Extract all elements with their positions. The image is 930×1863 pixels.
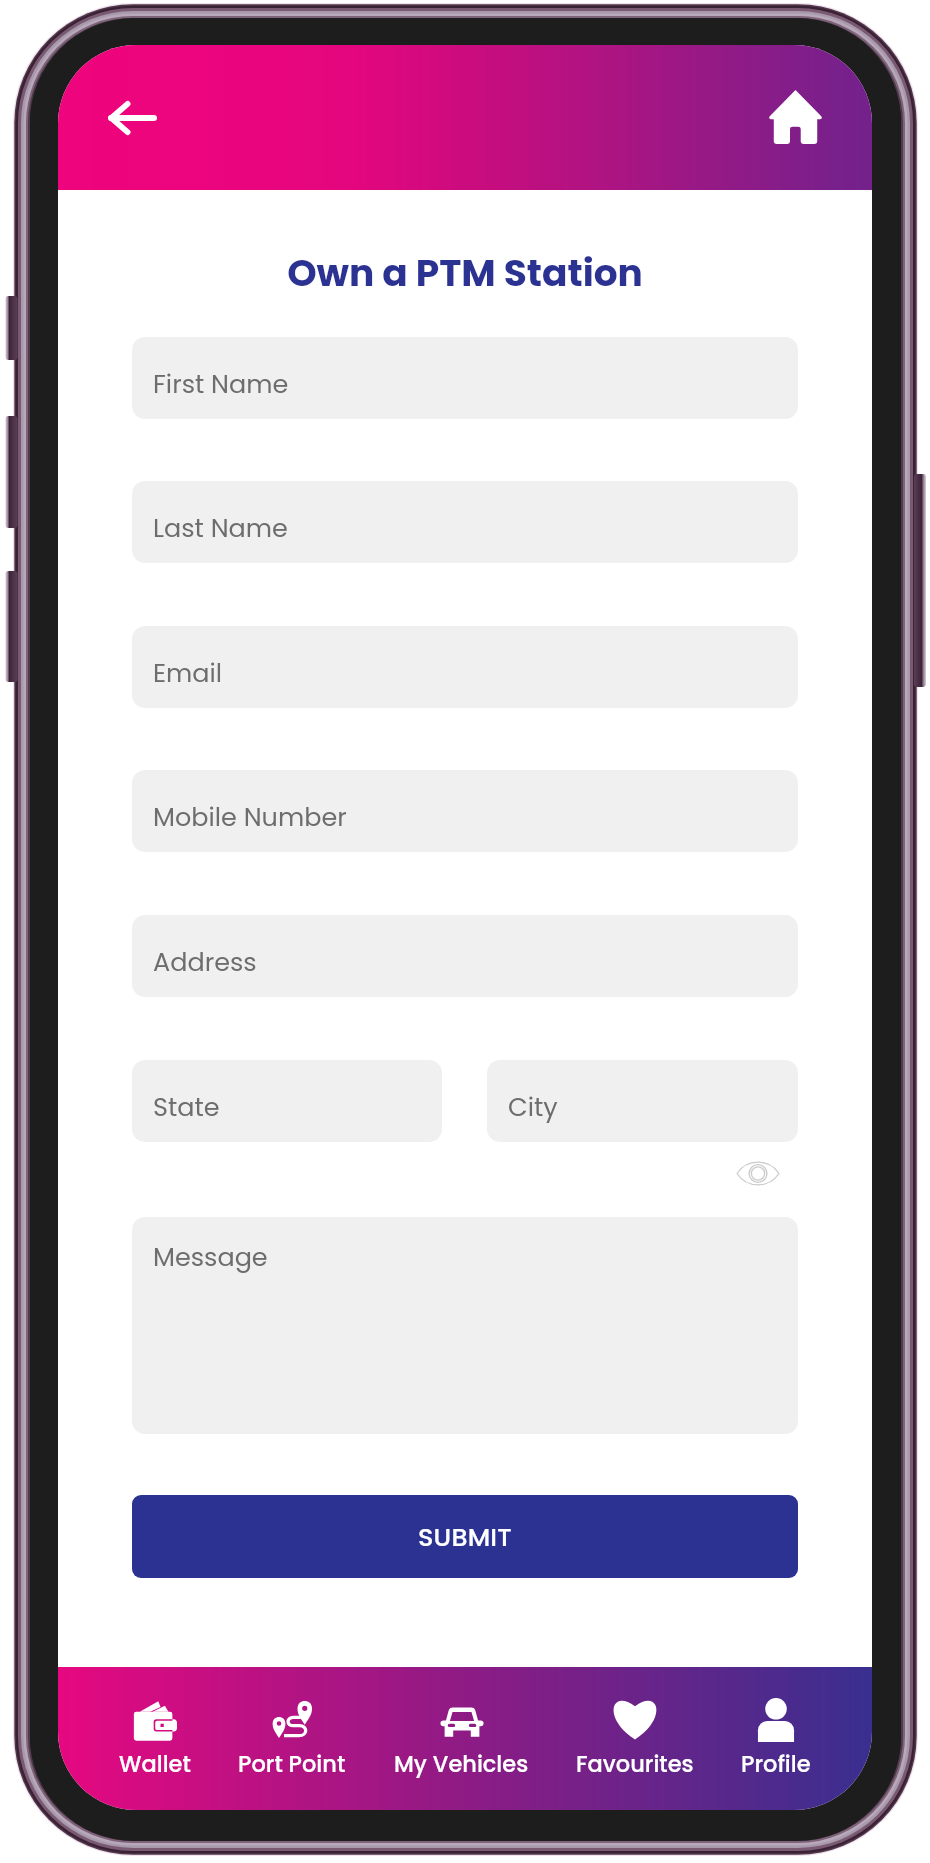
- button[interactable]: City: [487, 1060, 798, 1142]
- button[interactable]: First Name: [132, 337, 798, 419]
- staticText: Address: [153, 944, 257, 980]
- staticText: Favourites: [576, 1748, 694, 1779]
- staticText: Wallet: [119, 1748, 191, 1779]
- button[interactable]: SUBMIT: [132, 1495, 798, 1578]
- button[interactable]: My Vehicles: [394, 1667, 529, 1810]
- button[interactable]: Profile: [741, 1667, 811, 1810]
- button[interactable]: Home: [749, 75, 842, 157]
- staticText: Mobile Number: [153, 799, 347, 835]
- staticText: City: [508, 1089, 558, 1125]
- staticText: Email: [153, 655, 223, 691]
- button[interactable]: Port Point: [238, 1667, 346, 1810]
- button[interactable]: Mobile Number: [132, 770, 798, 852]
- button[interactable]: Email: [132, 626, 798, 708]
- button[interactable]: Wallet: [119, 1667, 191, 1810]
- staticText: Last Name: [153, 510, 288, 546]
- staticText: State: [153, 1089, 220, 1125]
- staticText: Own a PTM Station: [287, 247, 643, 300]
- staticText: Message: [153, 1239, 268, 1275]
- button[interactable]: Address: [132, 915, 798, 997]
- button[interactable]: Show password: [737, 1160, 779, 1187]
- staticText: Port Point: [238, 1748, 346, 1779]
- staticText: SUBMIT: [418, 1519, 512, 1555]
- staticText: My Vehicles: [394, 1748, 529, 1779]
- button[interactable]: State: [132, 1060, 442, 1142]
- staticText: First Name: [153, 366, 289, 402]
- button[interactable]: Last Name: [132, 481, 798, 563]
- staticText: Profile: [741, 1748, 811, 1779]
- button[interactable]: Back: [86, 81, 179, 155]
- button[interactable]: Message: [132, 1217, 798, 1434]
- button[interactable]: Favourites: [576, 1667, 694, 1810]
